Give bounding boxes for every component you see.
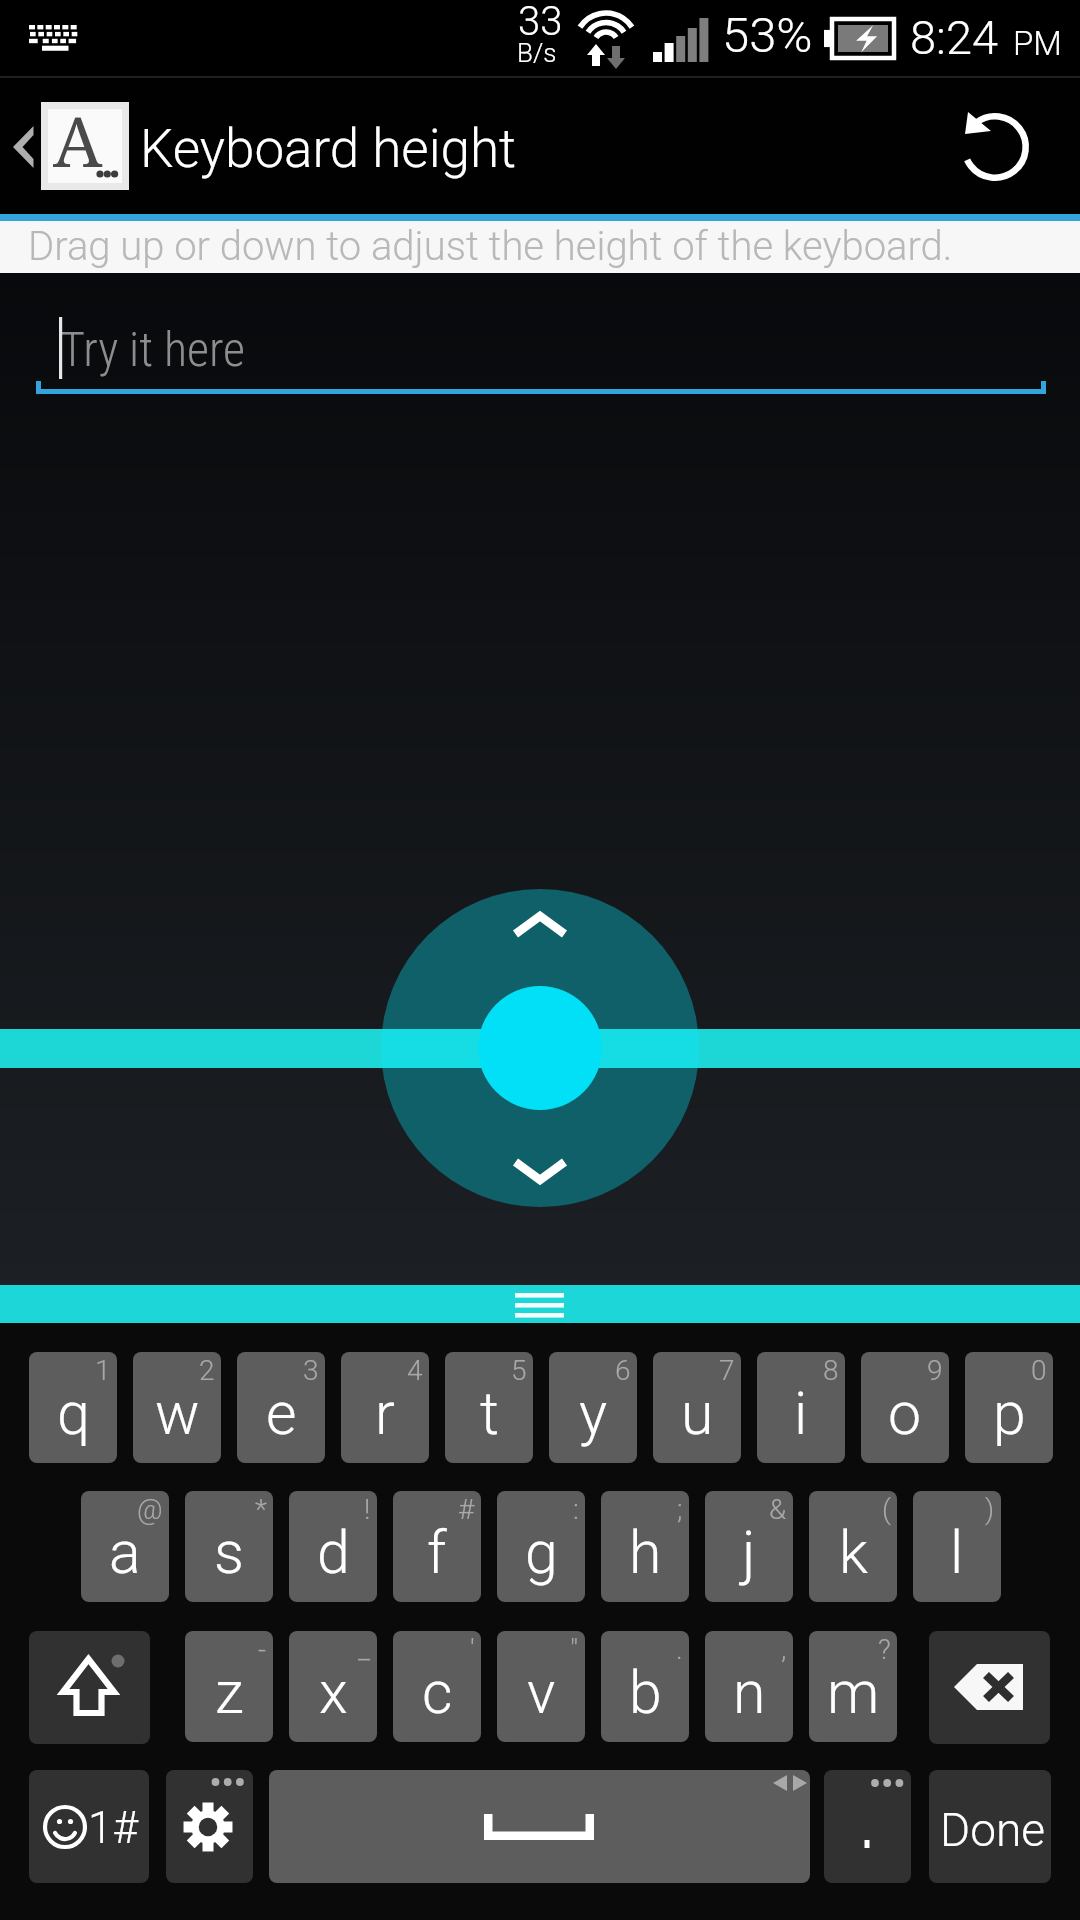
staticText: b bbox=[629, 1658, 662, 1727]
staticText: ) bbox=[985, 1493, 995, 1526]
button[interactable]: Try it here bbox=[0, 280, 1080, 410]
staticText: c bbox=[422, 1658, 453, 1727]
button[interactable]: # bbox=[393, 1491, 481, 1602]
button[interactable]: ) bbox=[913, 1491, 1001, 1602]
staticText: f bbox=[427, 1518, 447, 1587]
staticText: # bbox=[458, 1493, 475, 1526]
staticText: d bbox=[317, 1518, 350, 1587]
button[interactable]: 9 bbox=[861, 1352, 949, 1463]
staticText: 1# bbox=[88, 1802, 138, 1854]
button[interactable]: - bbox=[185, 1631, 273, 1742]
button[interactable]: " bbox=[497, 1631, 585, 1742]
staticText: u bbox=[681, 1379, 714, 1448]
button[interactable]: Period bbox=[824, 1770, 911, 1883]
staticText: o bbox=[888, 1379, 922, 1448]
button[interactable]: ! bbox=[289, 1491, 377, 1602]
button[interactable]: @ bbox=[81, 1491, 169, 1602]
staticText: q bbox=[57, 1379, 90, 1448]
staticText: " bbox=[570, 1633, 579, 1666]
staticText: A bbox=[53, 92, 103, 180]
staticText: 7 bbox=[719, 1354, 735, 1387]
staticText: 8 bbox=[823, 1354, 839, 1387]
button[interactable]: Space bbox=[269, 1770, 810, 1883]
button[interactable]: 8 bbox=[757, 1352, 845, 1463]
button[interactable]: Done bbox=[929, 1770, 1051, 1883]
staticText: , bbox=[781, 1633, 787, 1666]
staticText: y bbox=[579, 1379, 608, 1448]
button[interactable]: . bbox=[601, 1631, 689, 1742]
button[interactable]: Drag to adjust keyboard height bbox=[0, 880, 1080, 1220]
staticText: a bbox=[109, 1518, 141, 1587]
staticText: Try it here bbox=[60, 321, 245, 377]
staticText: ? bbox=[878, 1633, 891, 1666]
button[interactable]: ' bbox=[393, 1631, 481, 1742]
staticText: 8:24 bbox=[910, 10, 999, 65]
staticText: v bbox=[527, 1658, 556, 1727]
staticText: PM bbox=[1013, 24, 1062, 63]
staticText: 1 bbox=[95, 1354, 111, 1387]
button[interactable]: ; bbox=[601, 1491, 689, 1602]
button[interactable]: 5 bbox=[445, 1352, 533, 1463]
button[interactable]: 1 bbox=[29, 1352, 117, 1463]
staticText: w bbox=[155, 1379, 200, 1448]
staticText: 33 bbox=[518, 0, 563, 45]
staticText: l bbox=[950, 1518, 964, 1587]
staticText: e bbox=[266, 1379, 297, 1448]
staticText: ! bbox=[364, 1493, 371, 1526]
staticText: g bbox=[525, 1518, 558, 1587]
staticText: . bbox=[676, 1633, 683, 1666]
staticText: h bbox=[629, 1518, 662, 1587]
button[interactable]: 0 bbox=[965, 1352, 1053, 1463]
button[interactable]: : bbox=[497, 1491, 585, 1602]
button[interactable]: 2 bbox=[133, 1352, 221, 1463]
button[interactable]: & bbox=[705, 1491, 793, 1602]
staticText: 5 bbox=[511, 1354, 527, 1387]
staticText: k bbox=[839, 1518, 868, 1587]
button[interactable]: Settings bbox=[166, 1770, 253, 1883]
staticText: * bbox=[255, 1493, 267, 1526]
staticText: ' bbox=[470, 1633, 475, 1666]
button[interactable]: 7 bbox=[653, 1352, 741, 1463]
staticText: z bbox=[215, 1658, 244, 1727]
staticText: B/s bbox=[517, 38, 557, 68]
button[interactable]: ( bbox=[809, 1491, 897, 1602]
staticText: & bbox=[769, 1493, 787, 1526]
staticText: ( bbox=[882, 1493, 891, 1526]
staticText: Keyboard height bbox=[140, 118, 517, 180]
staticText: s bbox=[214, 1518, 244, 1587]
staticText: 0 bbox=[1031, 1354, 1047, 1387]
staticText: i bbox=[794, 1379, 808, 1448]
button[interactable]: A bbox=[41, 102, 129, 190]
staticText: r bbox=[375, 1379, 395, 1448]
button[interactable]: Shift bbox=[29, 1631, 150, 1744]
staticText: Drag up or down to adjust the height of … bbox=[28, 223, 953, 270]
staticText: : bbox=[573, 1493, 579, 1526]
staticText: m bbox=[827, 1658, 880, 1727]
button[interactable]: 4 bbox=[341, 1352, 429, 1463]
staticText: _ bbox=[358, 1633, 371, 1666]
button[interactable]: ? bbox=[809, 1631, 897, 1742]
button[interactable]: Reset bbox=[950, 100, 1046, 196]
button[interactable]: , bbox=[705, 1631, 793, 1742]
staticText: 9 bbox=[927, 1354, 943, 1387]
staticText: - bbox=[258, 1633, 267, 1666]
button[interactable]: Backspace bbox=[929, 1631, 1050, 1744]
button[interactable]: Symbols bbox=[29, 1770, 149, 1883]
button[interactable]: 6 bbox=[549, 1352, 637, 1463]
staticText: j bbox=[742, 1518, 756, 1587]
staticText: 53% bbox=[722, 7, 813, 64]
staticText: 3 bbox=[303, 1354, 319, 1387]
button[interactable]: * bbox=[185, 1491, 273, 1602]
staticText: 6 bbox=[615, 1354, 631, 1387]
staticText: Done bbox=[940, 1803, 1045, 1857]
staticText: t bbox=[480, 1379, 499, 1448]
staticText: x bbox=[319, 1658, 348, 1727]
staticText: p bbox=[993, 1379, 1026, 1448]
button[interactable]: 3 bbox=[237, 1352, 325, 1463]
staticText: n bbox=[733, 1658, 766, 1727]
staticText: 4 bbox=[407, 1354, 423, 1387]
button[interactable]: _ bbox=[289, 1631, 377, 1742]
staticText: @ bbox=[137, 1493, 163, 1526]
staticText: 2 bbox=[199, 1354, 215, 1387]
staticText: ; bbox=[677, 1493, 683, 1526]
